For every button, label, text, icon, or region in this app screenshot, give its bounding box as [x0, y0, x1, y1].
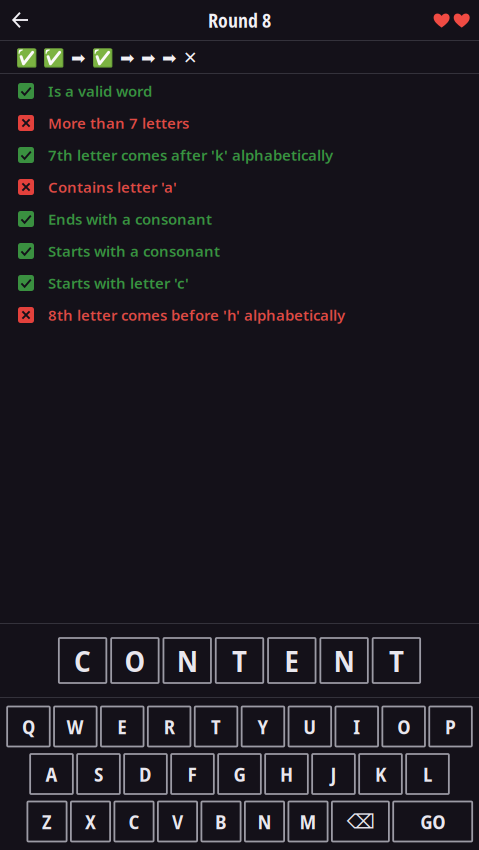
button[interactable]: R	[148, 706, 190, 746]
staticText: S	[94, 760, 103, 788]
staticText: G	[233, 760, 245, 788]
button[interactable]: U	[288, 706, 331, 746]
staticText: Ends with a consonant	[48, 209, 212, 229]
button[interactable]: A	[30, 754, 73, 794]
staticText: F	[187, 760, 197, 788]
staticText: 8th letter comes before 'h' alphabetical…	[48, 305, 345, 325]
staticText: E	[284, 640, 299, 680]
button[interactable]: L	[406, 754, 449, 794]
staticText: N	[334, 640, 355, 680]
staticText: C	[128, 808, 139, 835]
staticText: Starts with letter 'c'	[48, 273, 189, 293]
button[interactable]: GO	[393, 801, 472, 841]
staticText: V	[172, 808, 183, 835]
staticText: Z	[42, 808, 52, 835]
button[interactable]: B	[201, 801, 241, 841]
button[interactable]: D	[124, 754, 167, 794]
staticText: K	[375, 760, 386, 788]
button[interactable]: G	[218, 754, 261, 794]
button[interactable]: Y	[242, 706, 284, 746]
staticText: Contains letter 'a'	[48, 177, 177, 197]
button[interactable]: O	[382, 706, 425, 746]
staticText: E	[117, 713, 127, 740]
staticText: D	[139, 760, 152, 788]
button[interactable]: X	[71, 801, 110, 841]
staticText: R	[164, 713, 175, 740]
button[interactable]: P	[429, 706, 472, 746]
button[interactable]: T	[195, 706, 237, 746]
staticText: U	[303, 713, 316, 740]
button[interactable]: Q	[7, 706, 50, 746]
staticText: J	[330, 760, 336, 788]
staticText: Is a valid word	[48, 81, 152, 101]
staticText: A	[45, 760, 57, 788]
staticText: I	[353, 713, 360, 740]
staticText: 7th letter comes after 'k' alphabeticall…	[48, 145, 333, 165]
staticText: H	[280, 760, 293, 788]
button[interactable]: ⌫	[332, 801, 389, 841]
staticText: M	[299, 808, 316, 835]
button[interactable]: S	[77, 754, 120, 794]
staticText: N	[177, 640, 198, 680]
staticText: ✅ ✅ ➡ ✅ ➡ ➡ ➡ ✕	[16, 45, 198, 68]
staticText: Round 8	[208, 6, 271, 34]
button[interactable]: N	[245, 801, 284, 841]
button[interactable]: C	[114, 801, 154, 841]
staticText: GO	[420, 808, 445, 835]
staticText: B	[215, 808, 227, 835]
staticText: C	[74, 640, 91, 680]
button[interactable]: M	[288, 801, 328, 841]
staticText: X	[85, 808, 96, 835]
staticText: T	[232, 640, 247, 680]
button[interactable]: K	[359, 754, 402, 794]
button[interactable]: E	[101, 706, 143, 746]
button[interactable]: H	[265, 754, 308, 794]
button[interactable]: J	[312, 754, 355, 794]
staticText: More than 7 letters	[48, 113, 189, 133]
staticText: O	[124, 640, 145, 680]
staticText: Y	[257, 713, 268, 740]
staticText: W	[67, 713, 84, 740]
staticText: ⌫	[346, 810, 374, 833]
button[interactable]: V	[158, 801, 197, 841]
staticText: Starts with a consonant	[48, 241, 220, 261]
staticText: O	[397, 713, 410, 740]
staticText: T	[211, 713, 221, 740]
button[interactable]: Z	[27, 801, 67, 841]
staticText: P	[445, 713, 456, 740]
button[interactable]: F	[171, 754, 214, 794]
staticText: L	[423, 760, 432, 788]
staticText: T	[389, 640, 404, 680]
button[interactable]: Back	[0, 0, 41, 40]
button[interactable]: I	[335, 706, 378, 746]
staticText: Q	[22, 713, 35, 740]
staticText: N	[257, 808, 271, 835]
button[interactable]: W	[54, 706, 97, 746]
